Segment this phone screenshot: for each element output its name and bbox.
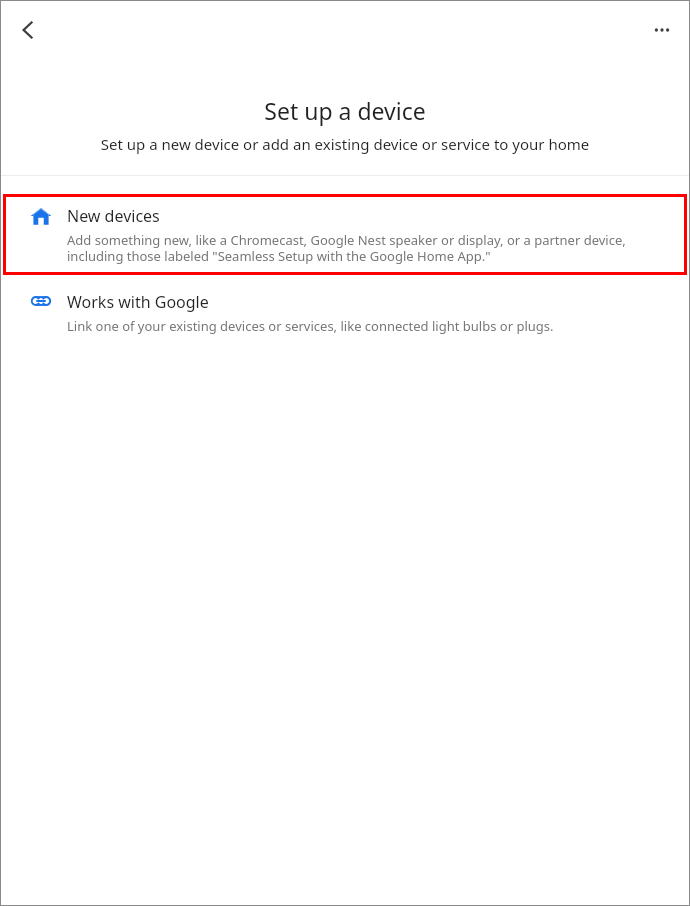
staticText: Set up a new device or add an existing d… [0, 134, 690, 154]
staticText: Set up a device [0, 95, 690, 126]
button[interactable]: Back [6, 8, 50, 52]
staticText: Add something new, like a Chromecast, Go… [67, 231, 675, 264]
button[interactable]: More options [640, 8, 684, 52]
staticText: Works with Google [67, 291, 209, 313]
button[interactable]: New devices [3, 194, 687, 275]
staticText: New devices [67, 205, 160, 227]
button[interactable]: Works with Google [0, 285, 690, 345]
staticText: Link one of your existing devices or ser… [67, 317, 554, 335]
